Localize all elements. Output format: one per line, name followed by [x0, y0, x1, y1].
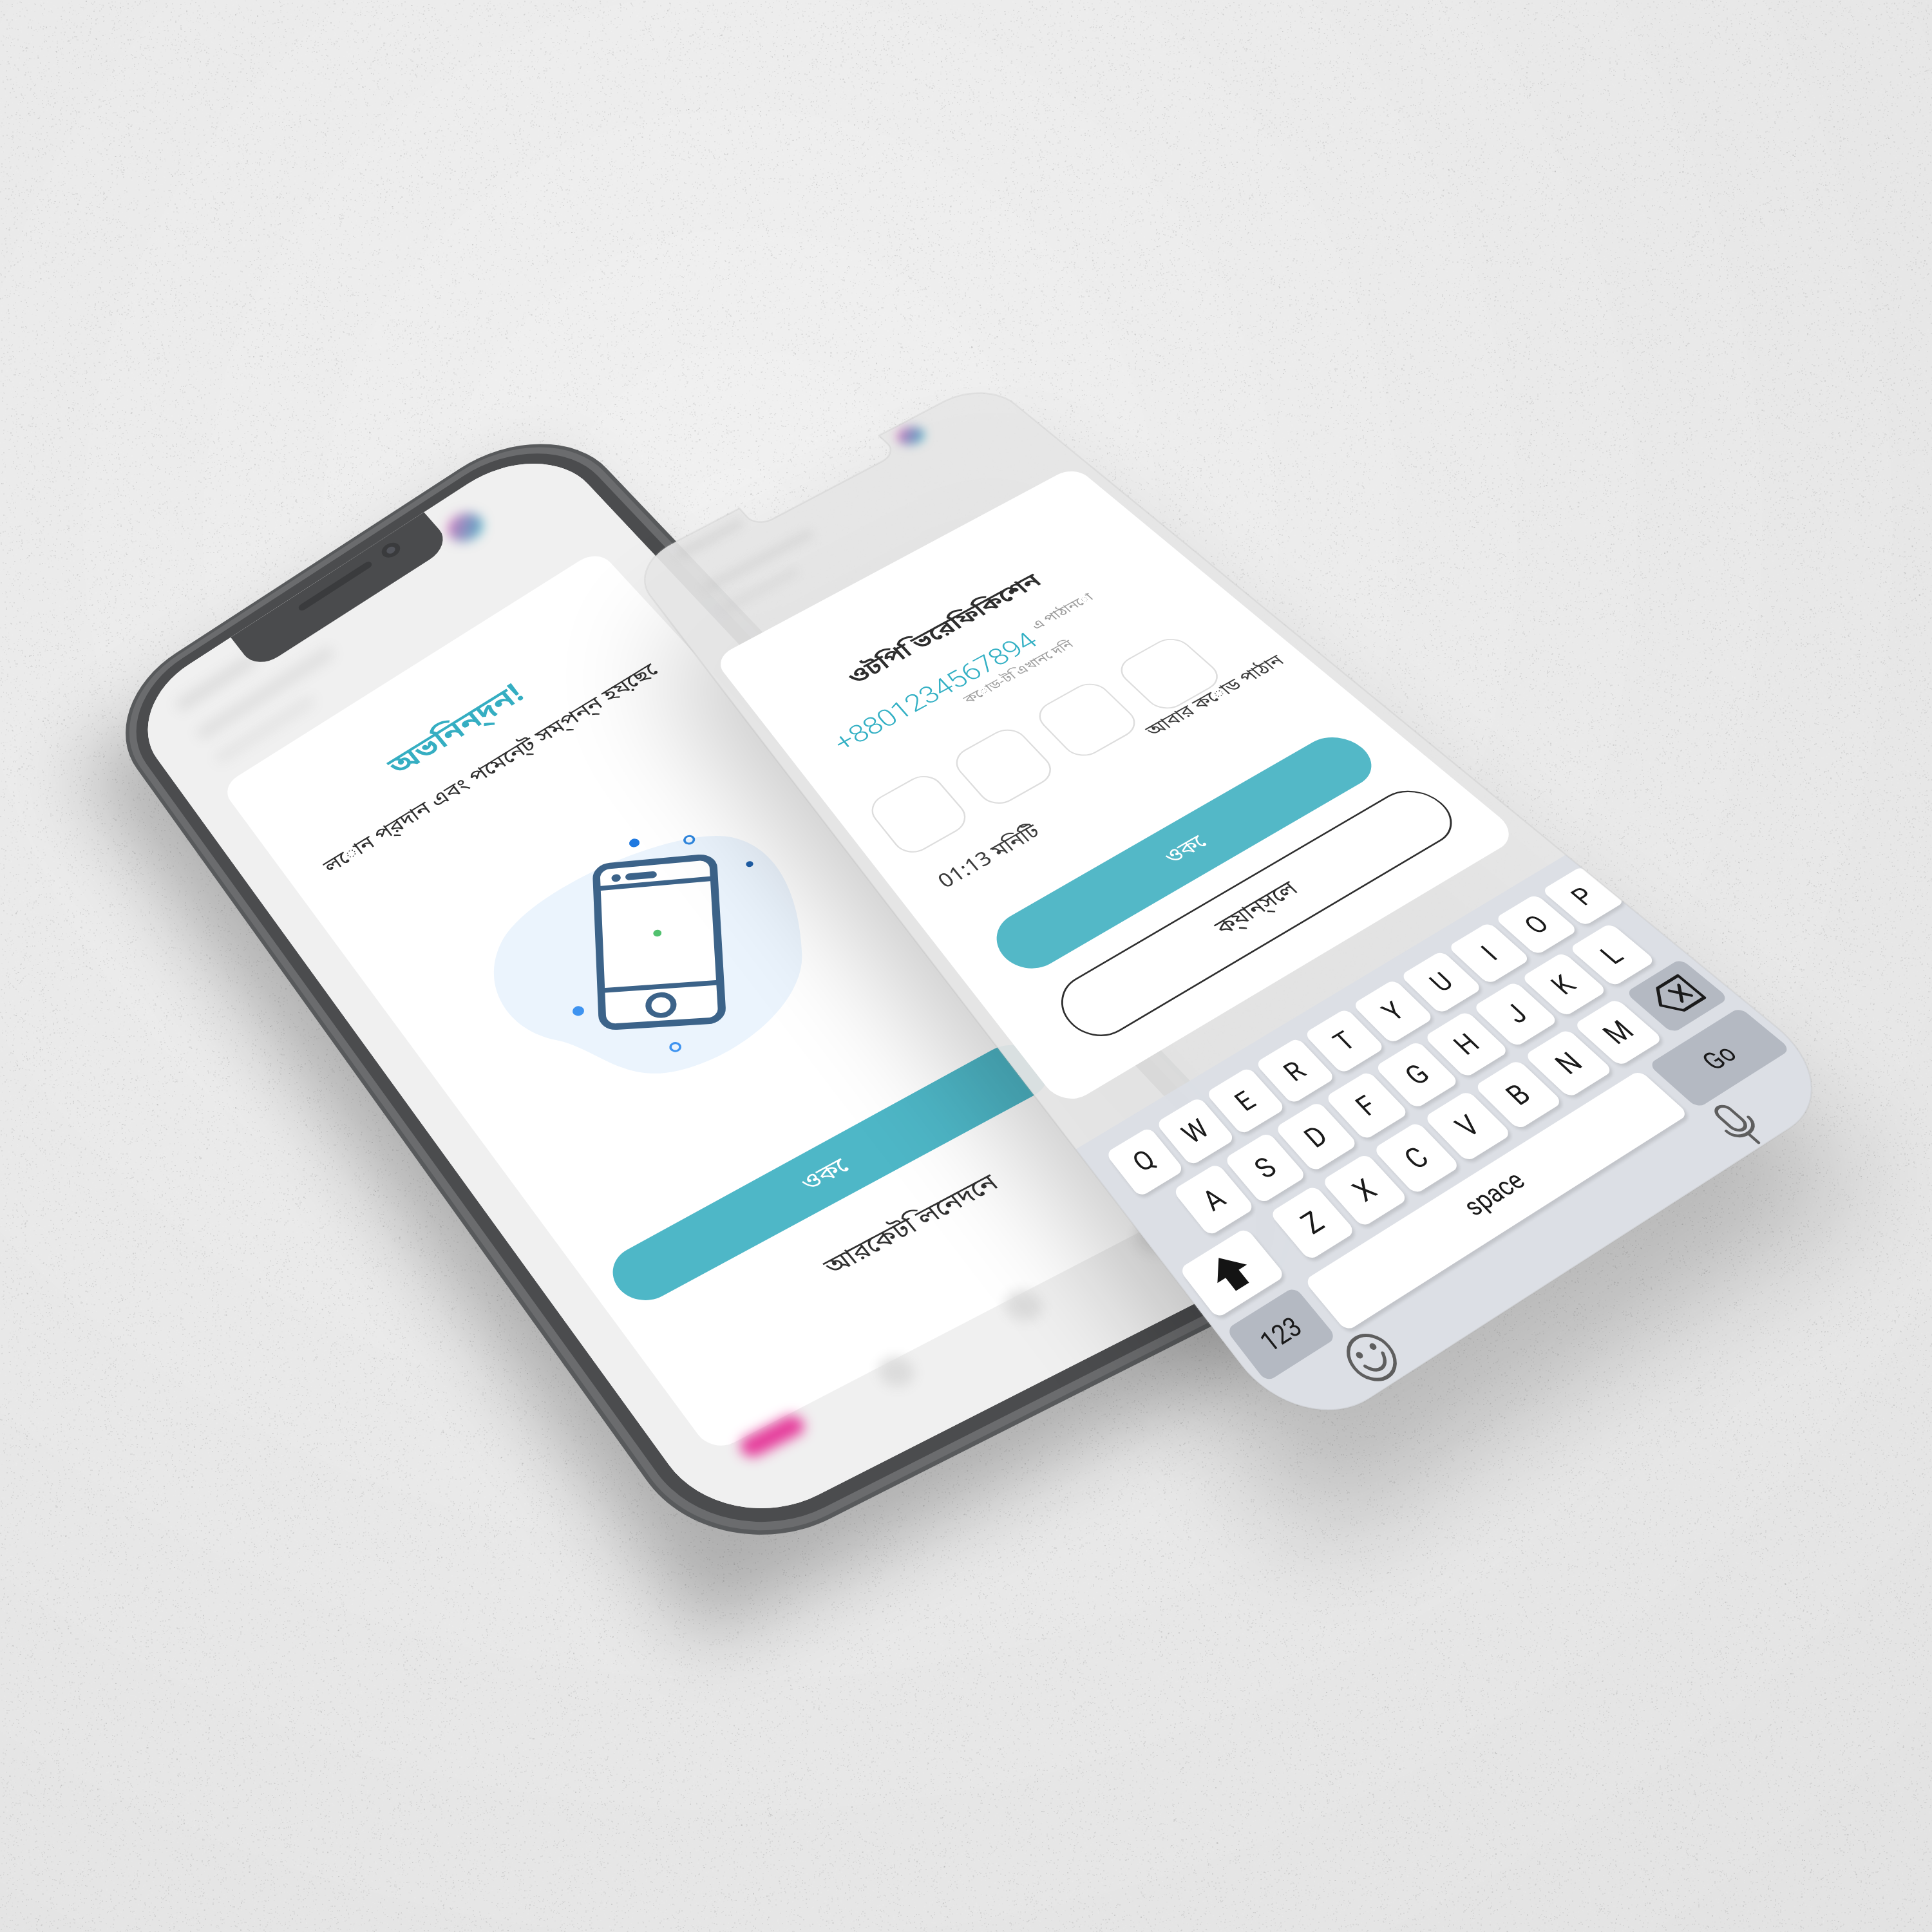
- button[interactable]: Cancel: [1005, 895, 1539, 1172]
- button[interactable]: Another transaction: [541, 1340, 1030, 1571]
- button[interactable]: Keyboard: [1095, 1005, 1861, 1494]
- button[interactable]: OTP code input: [837, 683, 1159, 953]
- button[interactable]: OK: [335, 1204, 824, 1475]
- button[interactable]: Resend code: [1121, 631, 1481, 824]
- button[interactable]: OTP verification OK button: [921, 760, 1449, 1037]
